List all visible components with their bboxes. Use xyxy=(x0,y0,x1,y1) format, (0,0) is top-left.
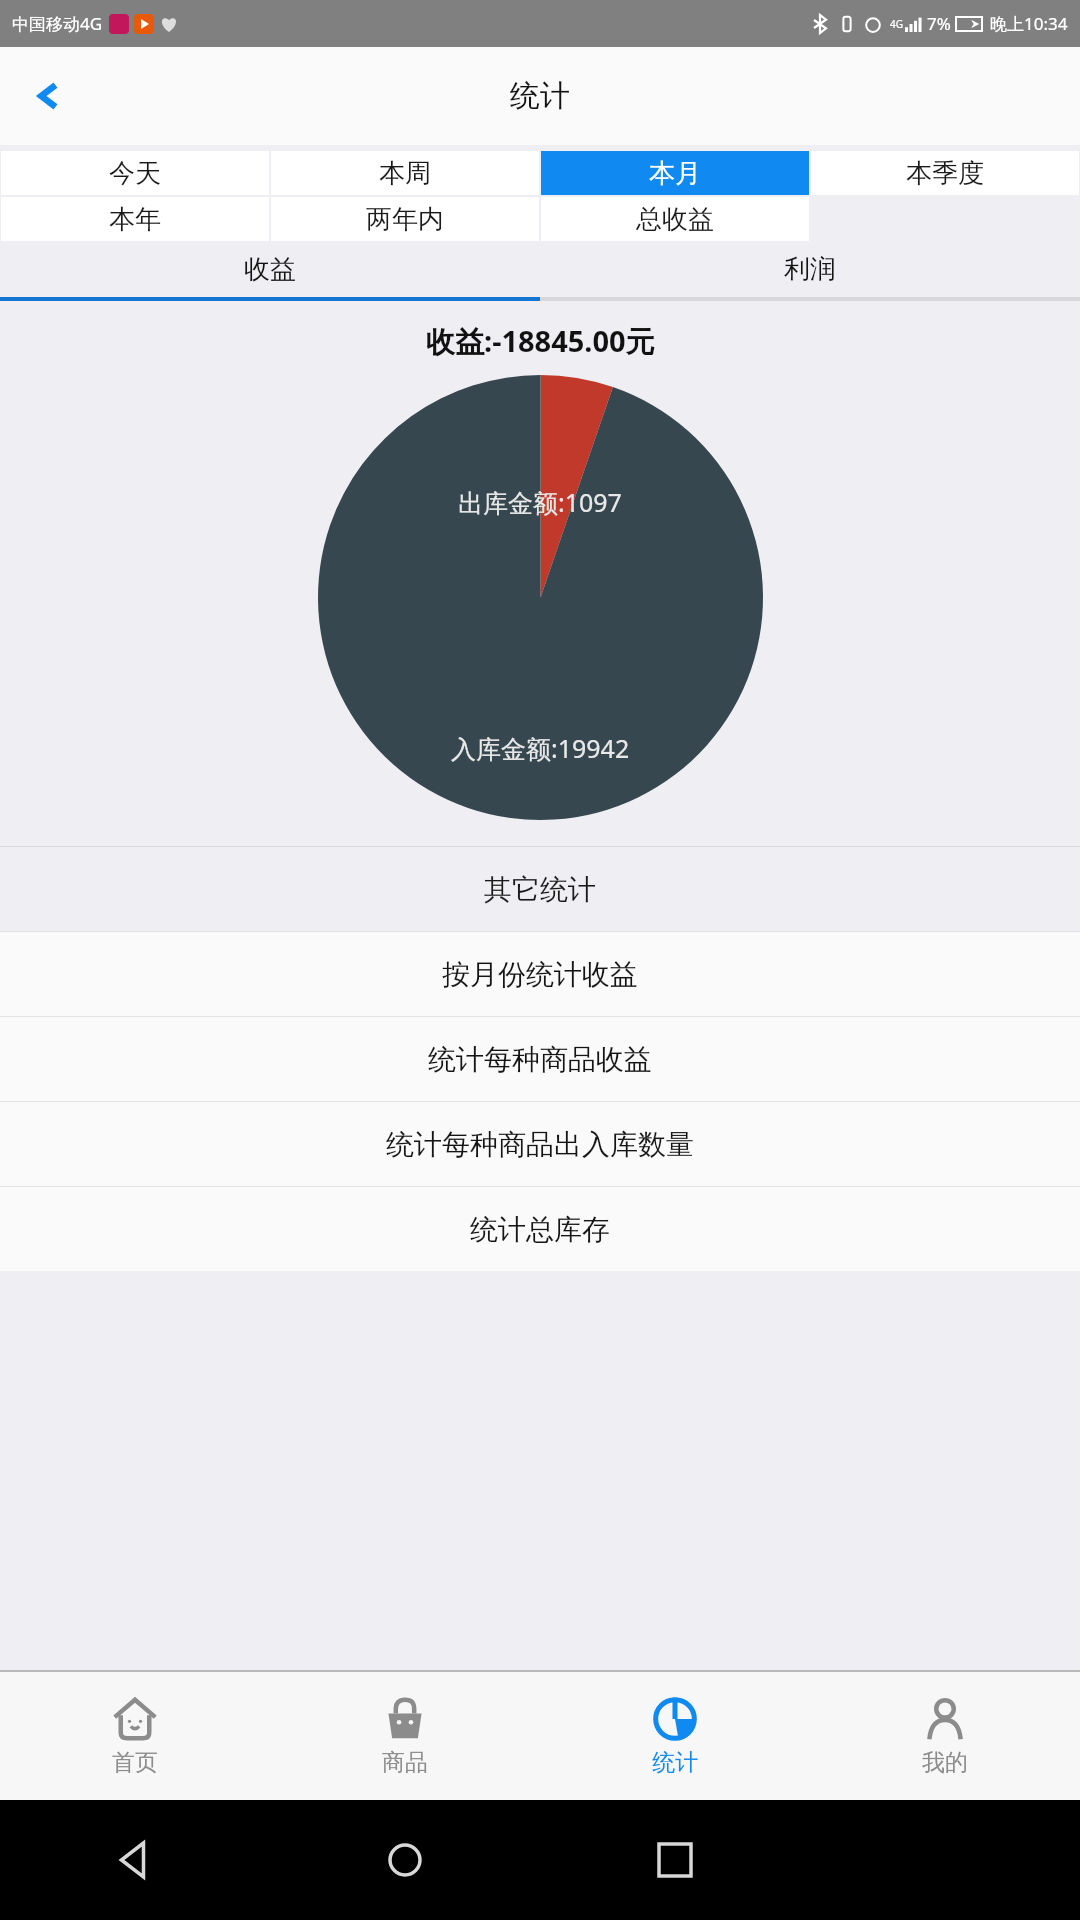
staticText: 7% xyxy=(927,12,951,35)
staticText: 本年 xyxy=(109,203,161,236)
staticText: 统计每种商品收益 xyxy=(428,1042,652,1077)
staticText: 首页 xyxy=(112,1748,158,1777)
staticText: 其它统计 xyxy=(484,872,596,907)
staticText: 两年内 xyxy=(366,203,444,236)
button[interactable]: Recents xyxy=(540,1800,810,1920)
staticText: 中国移动4G xyxy=(12,12,103,35)
staticText: 晚上10:34 xyxy=(990,12,1068,35)
staticText: 入库金额:19942 xyxy=(451,731,630,765)
staticText: 收益 xyxy=(244,253,296,286)
button[interactable]: 统计 xyxy=(540,1672,810,1800)
button[interactable]: 两年内 xyxy=(271,197,539,241)
button[interactable]: 其它统计 xyxy=(0,847,1080,931)
staticText: 统计总库存 xyxy=(470,1212,610,1247)
staticText: 收益:-18845.00元 xyxy=(426,321,655,361)
staticText: 商品 xyxy=(382,1748,428,1777)
button[interactable]: 统计每种商品出入库数量 xyxy=(0,1102,1080,1186)
button[interactable]: 按月份统计收益 xyxy=(0,932,1080,1016)
staticText: 我的 xyxy=(922,1748,968,1777)
button[interactable]: 收益 xyxy=(0,242,540,297)
staticText: 统计 xyxy=(652,1748,698,1777)
staticText: 出库金额:1097 xyxy=(458,485,622,519)
staticText: 今天 xyxy=(109,157,161,190)
button[interactable]: 本季度 xyxy=(811,151,1079,195)
staticText: 4G xyxy=(890,17,903,31)
staticText: 统计 xyxy=(510,77,570,115)
button[interactable]: 我的 xyxy=(810,1672,1080,1800)
staticText: 利润 xyxy=(784,253,836,286)
button[interactable]: Home xyxy=(270,1800,540,1920)
staticText: 按月份统计收益 xyxy=(442,957,638,992)
staticText: 统计每种商品出入库数量 xyxy=(386,1127,694,1162)
button[interactable]: Back xyxy=(22,69,76,123)
button[interactable]: 今天 xyxy=(1,151,269,195)
button[interactable]: 商品 xyxy=(270,1672,540,1800)
button[interactable]: 统计总库存 xyxy=(0,1187,1080,1271)
button[interactable]: 本年 xyxy=(1,197,269,241)
button[interactable]: 总收益 xyxy=(541,197,809,241)
staticText: 总收益 xyxy=(636,203,714,236)
button[interactable]: Back xyxy=(0,1800,270,1920)
staticText: 本月 xyxy=(649,157,701,190)
button[interactable]: 本周 xyxy=(271,151,539,195)
button[interactable]: 本月 xyxy=(541,151,809,195)
button[interactable]: 利润 xyxy=(540,242,1080,297)
staticText: 本周 xyxy=(379,157,431,190)
button[interactable]: 首页 xyxy=(0,1672,270,1800)
button[interactable]: 统计每种商品收益 xyxy=(0,1017,1080,1101)
staticText: 本季度 xyxy=(906,157,984,190)
